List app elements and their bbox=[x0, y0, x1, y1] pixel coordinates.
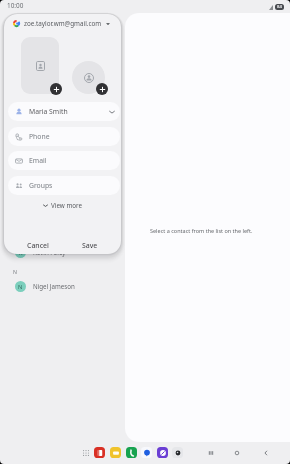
staticText: Save bbox=[82, 241, 98, 250]
button[interactable]: Maria Smith bbox=[8, 102, 120, 121]
button[interactable]: N bbox=[0, 277, 124, 295]
staticText: 84 bbox=[277, 4, 282, 10]
button[interactable]: Add bbox=[50, 83, 62, 95]
button[interactable]: Email bbox=[8, 151, 120, 170]
staticText: Email bbox=[29, 156, 47, 165]
button[interactable]: Add photo bbox=[21, 37, 59, 94]
button[interactable]: Phone bbox=[8, 127, 120, 146]
button[interactable]: Add bbox=[96, 83, 108, 95]
button[interactable]: Home bbox=[231, 447, 242, 458]
button[interactable]: View more bbox=[4, 198, 121, 212]
button[interactable]: Back bbox=[260, 447, 271, 458]
staticText: Kevin Foley bbox=[33, 248, 66, 256]
button[interactable]: App bbox=[157, 447, 168, 458]
staticText: Groups bbox=[29, 181, 53, 190]
staticText: Maria Smith bbox=[29, 107, 68, 116]
button[interactable]: App bbox=[141, 447, 152, 458]
button[interactable]: App bbox=[110, 447, 121, 458]
button[interactable]: App bbox=[94, 447, 105, 458]
button[interactable]: App bbox=[172, 447, 183, 458]
staticText: Cancel bbox=[27, 241, 49, 250]
button[interactable]: Add contact photo bbox=[72, 61, 105, 94]
button[interactable]: Groups bbox=[8, 176, 120, 195]
staticText: Select a contact from the list on the le… bbox=[150, 227, 253, 234]
button[interactable]: App bbox=[126, 447, 137, 458]
staticText: Phone bbox=[29, 132, 50, 141]
button[interactable]: zoe.taylor.wm@gmail.com bbox=[4, 16, 121, 31]
button[interactable]: Recents bbox=[205, 447, 216, 458]
button[interactable]: Save bbox=[78, 238, 102, 252]
staticText: Nigel Jameson bbox=[33, 282, 75, 290]
staticText: N bbox=[18, 283, 23, 291]
staticText: N bbox=[13, 268, 17, 275]
staticText: K bbox=[19, 249, 23, 257]
button[interactable]: All apps bbox=[81, 448, 91, 458]
staticText: View more bbox=[51, 201, 83, 210]
staticText: zoe.taylor.wm@gmail.com bbox=[24, 19, 102, 28]
staticText: 10:00 bbox=[7, 1, 24, 10]
button[interactable]: Cancel bbox=[23, 238, 53, 252]
button[interactable]: K bbox=[0, 243, 124, 261]
